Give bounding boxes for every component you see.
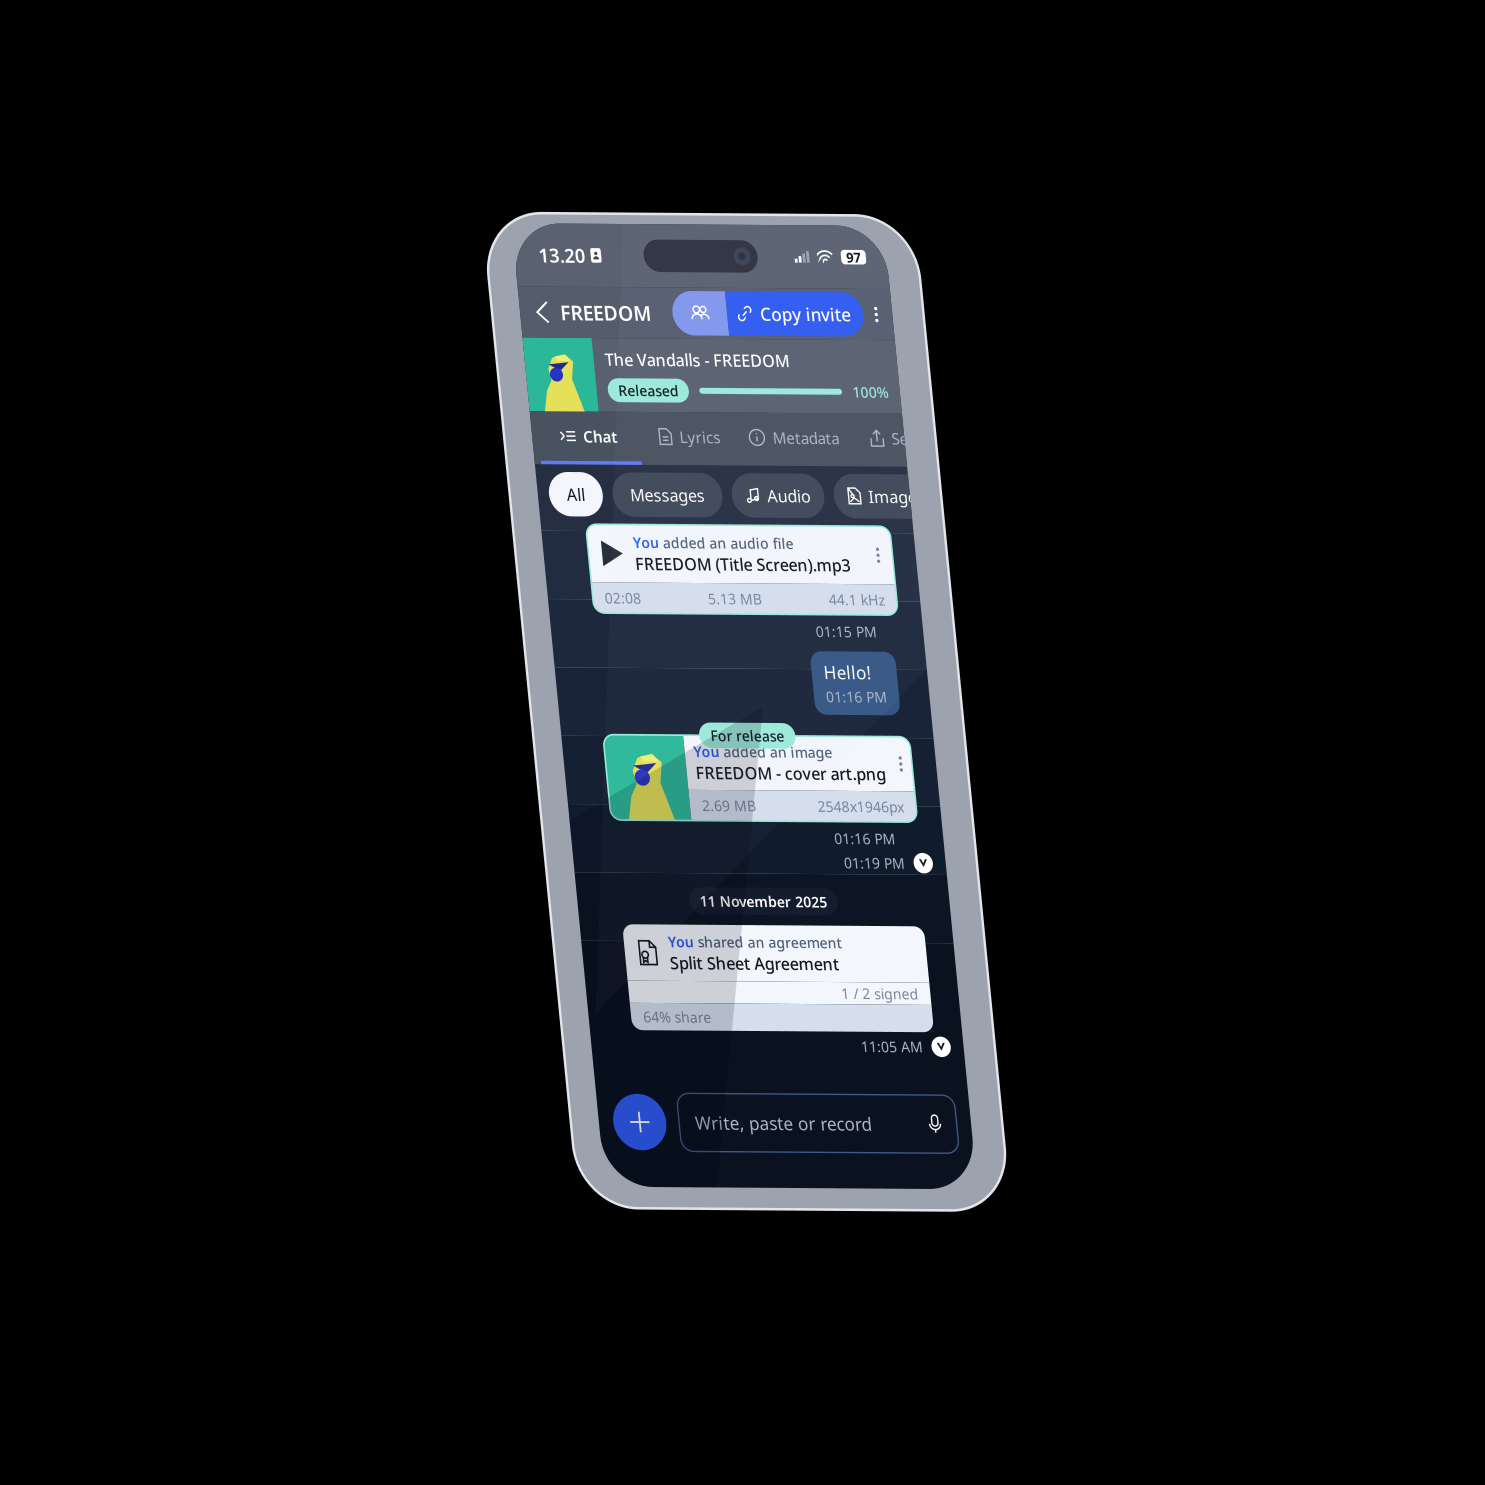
button[interactable]: Images <box>404 303 534 355</box>
button[interactable]: Ag <box>546 303 615 355</box>
staticText: Send <box>483 249 527 273</box>
staticText: Images <box>447 316 517 342</box>
button[interactable]: Send <box>429 232 554 294</box>
button[interactable]: A <box>554 232 679 294</box>
staticText: Ag <box>568 316 593 342</box>
